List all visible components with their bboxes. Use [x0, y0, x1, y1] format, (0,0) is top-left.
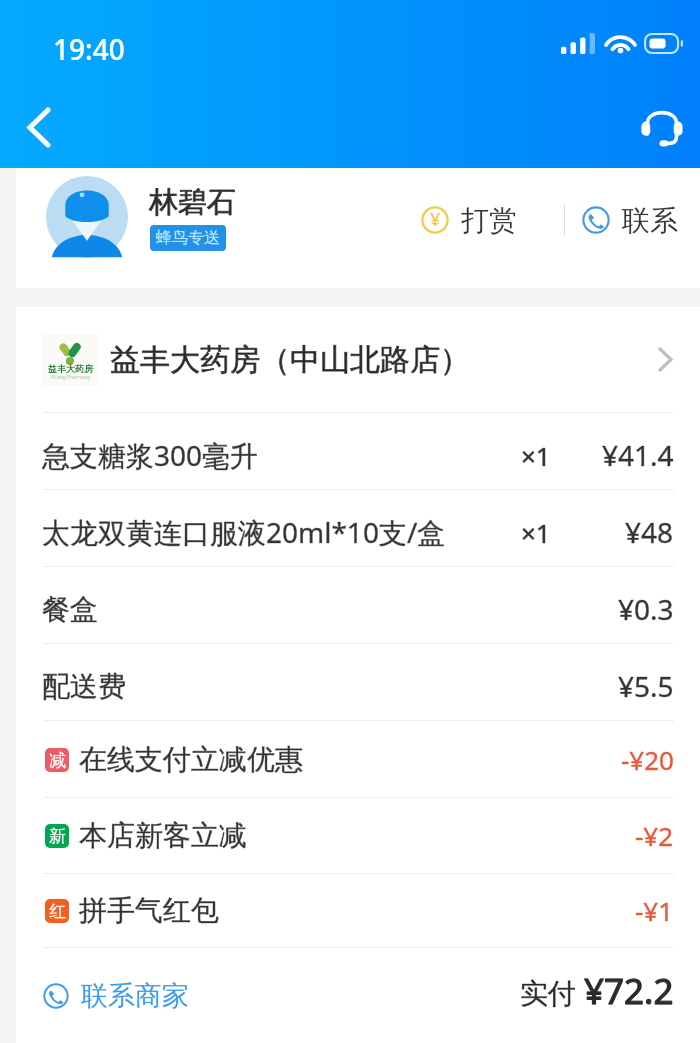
- staticText: 益丰大药房（中山北路店）: [110, 341, 470, 379]
- staticText: 新: [49, 826, 66, 847]
- staticText: ¥48: [625, 513, 674, 551]
- staticText: 益丰大药房（中山北路店）: [110, 341, 470, 379]
- staticText: 蜂鸟专送: [156, 228, 220, 248]
- staticText: -¥2: [635, 818, 674, 853]
- staticText: -¥1: [635, 893, 674, 928]
- staticText: 林碧石: [149, 184, 236, 221]
- staticText: 拼手气红包: [79, 893, 219, 928]
- staticText: ¥0.3: [618, 590, 674, 628]
- staticText: ×1: [521, 515, 551, 550]
- button[interactable]: 联系: [582, 181, 678, 259]
- staticText: 联系商家: [81, 979, 189, 1013]
- staticText: 益丰大药房: [48, 363, 93, 374]
- staticText: 打赏: [461, 203, 517, 238]
- staticText: -¥1: [635, 893, 674, 928]
- staticText: ¥48: [625, 513, 674, 551]
- staticText: 减: [49, 750, 66, 771]
- staticText: 拼手气红包: [79, 893, 219, 928]
- staticText: ×1: [521, 438, 551, 473]
- staticText: 联系: [622, 203, 678, 238]
- button[interactable]: Back: [8, 96, 70, 158]
- button[interactable]: ¥: [421, 181, 517, 259]
- staticText: 太龙双黄连口服液20ml*10支/盒: [42, 513, 446, 551]
- staticText: 配送费: [42, 669, 126, 704]
- staticText: YiFeng Pharmacy: [50, 374, 91, 381]
- staticText: ¥72.2: [584, 967, 674, 1015]
- staticText: 急支糖浆300毫升: [42, 436, 259, 474]
- staticText: ¥41.4: [602, 436, 674, 474]
- staticText: ¥5.5: [618, 667, 674, 705]
- staticText: ¥: [430, 207, 441, 232]
- staticText: -¥2: [635, 818, 674, 853]
- staticText: -¥20: [621, 742, 674, 777]
- staticText: ¥72.2: [584, 967, 674, 1015]
- staticText: 红: [49, 901, 66, 922]
- staticText: 19:40: [53, 30, 125, 68]
- staticText: ¥41.4: [602, 436, 674, 474]
- staticText: 本店新客立减: [79, 818, 247, 853]
- staticText: 餐盒: [42, 592, 98, 627]
- staticText: ¥5.5: [618, 667, 674, 705]
- staticText: 实付: [520, 973, 584, 1011]
- staticText: 在线支付立减优惠: [79, 742, 303, 777]
- staticText: 实付: [520, 973, 584, 1011]
- staticText: ×1: [521, 515, 551, 550]
- staticText: 太龙双黄连口服液20ml*10支/盒: [42, 513, 446, 551]
- button[interactable]: 联系商家: [43, 948, 674, 1043]
- staticText: ×1: [521, 438, 551, 473]
- button[interactable]: Customer service: [631, 95, 692, 156]
- staticText: ¥0.3: [618, 590, 674, 628]
- staticText: 配送费: [42, 669, 126, 704]
- button[interactable]: 益丰大药房: [16, 307, 700, 412]
- staticText: 餐盒: [42, 592, 98, 627]
- staticText: 在线支付立减优惠: [79, 742, 303, 777]
- staticText: 本店新客立减: [79, 818, 247, 853]
- staticText: 急支糖浆300毫升: [42, 436, 259, 474]
- staticText: 林碧石: [149, 184, 236, 221]
- staticText: -¥20: [621, 742, 674, 777]
